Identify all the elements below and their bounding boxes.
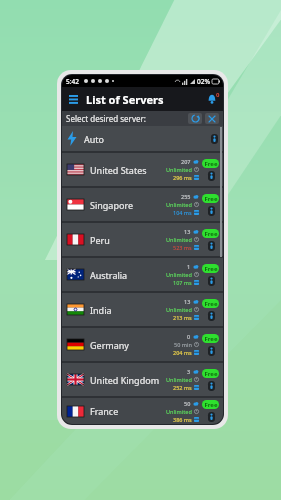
- staticText: List of Servers: [86, 92, 164, 107]
- button[interactable]: Server info: [210, 133, 218, 144]
- staticText: 50: [184, 400, 191, 407]
- staticText: India: [90, 304, 112, 316]
- staticText: Free: [204, 335, 218, 343]
- staticText: Unlimited: [166, 236, 192, 243]
- button[interactable]: Auto: [62, 126, 223, 151]
- staticText: 255: [181, 193, 191, 200]
- button[interactable]: Free: [202, 264, 219, 273]
- button[interactable]: United Kingdom: [62, 363, 223, 396]
- staticText: Peru: [90, 234, 110, 246]
- button[interactable]: Free: [202, 194, 219, 203]
- staticText: 213 ms: [173, 314, 192, 321]
- staticText: Free: [204, 300, 218, 308]
- staticText: 207: [181, 158, 191, 165]
- staticText: Free: [204, 195, 218, 203]
- staticText: 204 ms: [173, 349, 192, 356]
- staticText: 1: [187, 263, 191, 270]
- button[interactable]: France: [62, 398, 223, 424]
- staticText: 5:42: [66, 77, 79, 86]
- button[interactable]: Peru: [62, 223, 223, 256]
- button[interactable]: Server info: [207, 411, 215, 422]
- button[interactable]: Free: [202, 334, 219, 343]
- button[interactable]: Server info: [207, 380, 215, 391]
- staticText: Unlimited: [166, 306, 192, 313]
- button[interactable]: Free: [202, 369, 219, 378]
- button[interactable]: Server info: [207, 345, 215, 356]
- staticText: 50 min: [174, 341, 192, 348]
- staticText: Unlimited: [166, 408, 192, 415]
- staticText: Free: [204, 265, 218, 273]
- staticText: Free: [204, 370, 218, 378]
- button[interactable]: India: [62, 293, 223, 326]
- staticText: 13: [184, 228, 191, 235]
- button[interactable]: Server info: [207, 310, 215, 321]
- staticText: 02%: [197, 77, 210, 86]
- button[interactable]: Close: [205, 113, 219, 124]
- staticText: United States: [90, 164, 147, 176]
- button[interactable]: Free: [202, 229, 219, 238]
- staticText: 13: [184, 298, 191, 305]
- staticText: 0: [216, 91, 220, 99]
- button[interactable]: Server info: [207, 205, 215, 216]
- staticText: 0: [187, 333, 191, 340]
- button[interactable]: Germany: [62, 328, 223, 361]
- staticText: 386 ms: [173, 416, 192, 423]
- button[interactable]: United States: [62, 153, 223, 186]
- staticText: Unlimited: [166, 166, 192, 173]
- staticText: Unlimited: [166, 271, 192, 278]
- button[interactable]: Free: [202, 159, 219, 168]
- staticText: Unlimited: [166, 376, 192, 383]
- button[interactable]: Server info: [207, 170, 215, 181]
- staticText: 252 ms: [173, 384, 192, 391]
- staticText: 104 ms: [173, 209, 192, 216]
- button[interactable]: Notifications: [204, 91, 220, 107]
- button[interactable]: Australia: [62, 258, 223, 291]
- button[interactable]: Server info: [207, 275, 215, 286]
- staticText: Singapore: [90, 199, 134, 211]
- staticText: Select desired server:: [66, 113, 146, 124]
- staticText: 3: [187, 368, 191, 375]
- staticText: 107 ms: [173, 279, 192, 286]
- staticText: Free: [204, 401, 218, 409]
- button[interactable]: Free: [202, 299, 219, 308]
- staticText: Auto: [84, 133, 105, 145]
- staticText: 296 ms: [173, 174, 192, 181]
- button[interactable]: Refresh server list: [188, 113, 202, 124]
- button[interactable]: Server info: [207, 240, 215, 251]
- staticText: Unlimited: [166, 201, 192, 208]
- button[interactable]: Free: [202, 400, 219, 409]
- staticText: Germany: [90, 339, 129, 351]
- staticText: France: [90, 405, 119, 417]
- staticText: Free: [204, 160, 218, 168]
- staticText: United Kingdom: [90, 374, 160, 386]
- staticText: 523 ms: [173, 244, 192, 251]
- staticText: Australia: [90, 269, 128, 281]
- button[interactable]: Open navigation menu: [67, 93, 80, 106]
- button[interactable]: Singapore: [62, 188, 223, 221]
- staticText: Free: [204, 230, 218, 238]
